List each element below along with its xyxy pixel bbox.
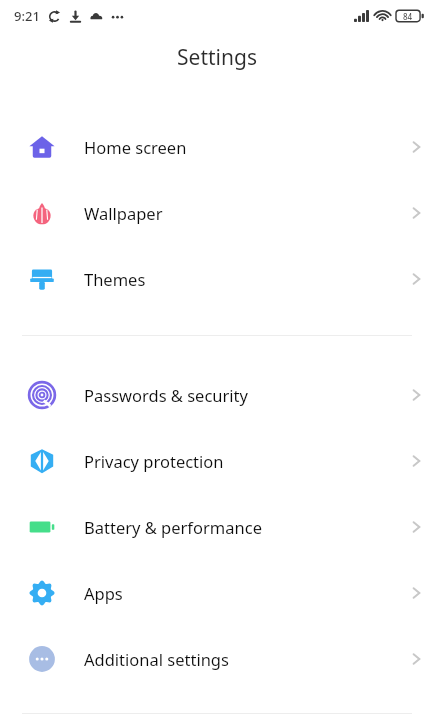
button[interactable]: Privacy protection bbox=[0, 428, 434, 494]
staticText: Battery & performance bbox=[84, 516, 398, 538]
staticText: Additional settings bbox=[84, 648, 398, 670]
staticText: Apps bbox=[84, 582, 398, 604]
staticText: 84 bbox=[403, 11, 413, 22]
staticText: Privacy protection bbox=[84, 450, 398, 472]
button[interactable]: Passwords & security bbox=[0, 362, 434, 428]
button[interactable]: Apps bbox=[0, 560, 434, 626]
staticText: 9:21 bbox=[14, 7, 40, 25]
button[interactable]: Battery & performance bbox=[0, 494, 434, 560]
staticText: Wallpaper bbox=[84, 202, 398, 224]
staticText: Passwords & security bbox=[84, 384, 398, 406]
staticText: Settings bbox=[177, 43, 257, 72]
staticText: Themes bbox=[84, 268, 398, 290]
button[interactable]: Wallpaper bbox=[0, 180, 434, 246]
button[interactable]: Home screen bbox=[0, 114, 434, 180]
button[interactable]: Themes bbox=[0, 246, 434, 312]
button[interactable]: Additional settings bbox=[0, 626, 434, 692]
staticText: Home screen bbox=[84, 136, 398, 158]
